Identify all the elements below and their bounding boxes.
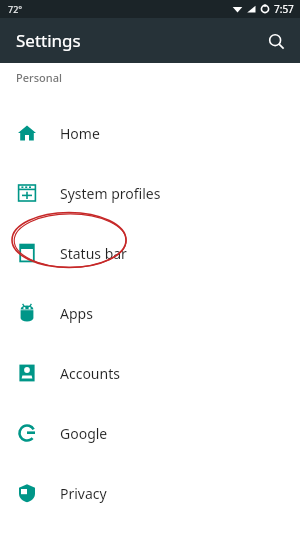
staticText: Personal xyxy=(16,70,62,85)
staticText: 7:57 xyxy=(274,2,294,16)
staticText: Status bar xyxy=(60,244,127,263)
button[interactable]: Privacy xyxy=(0,463,300,523)
staticText: Apps xyxy=(60,304,93,323)
staticText: Settings xyxy=(16,29,81,52)
button[interactable]: Google xyxy=(0,403,300,463)
button[interactable]: Accounts xyxy=(0,343,300,403)
staticText: 72° xyxy=(8,3,23,15)
button[interactable]: Home xyxy=(0,103,300,163)
staticText: System profiles xyxy=(60,184,161,203)
staticText: Accounts xyxy=(60,364,120,383)
button[interactable]: Apps xyxy=(0,283,300,343)
button[interactable]: System profiles xyxy=(0,163,300,223)
button[interactable]: Search xyxy=(258,23,294,59)
staticText: Google xyxy=(60,424,108,443)
staticText: Privacy xyxy=(60,484,107,503)
button[interactable]: Status bar xyxy=(0,223,300,283)
staticText: Home xyxy=(60,124,100,143)
